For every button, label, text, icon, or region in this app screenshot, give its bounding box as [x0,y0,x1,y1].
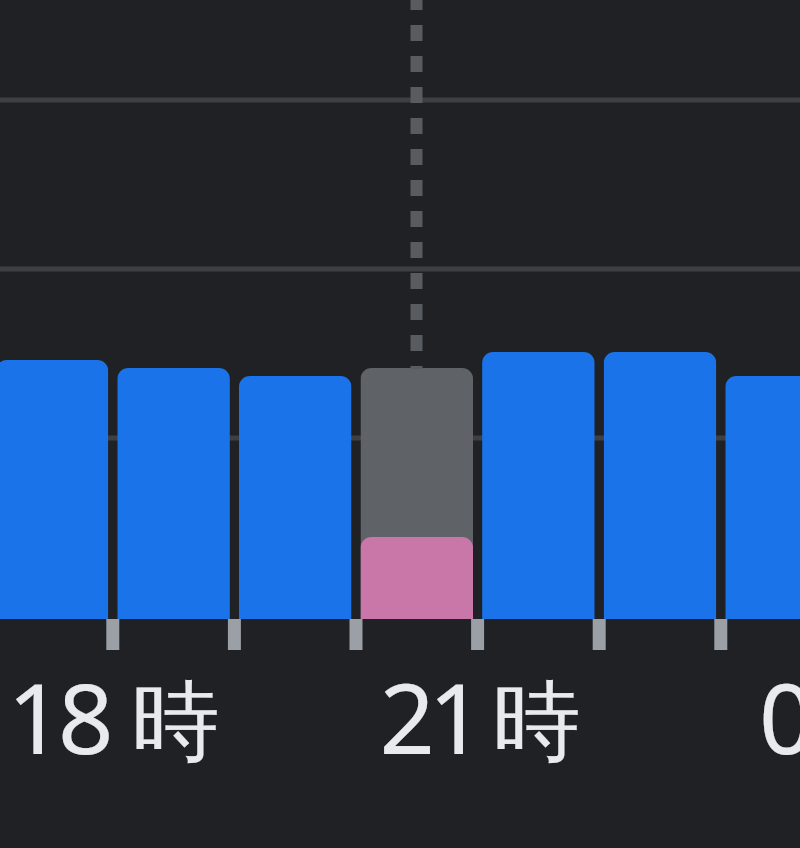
button[interactable]: Hourly activity bar chart [0,0,800,848]
